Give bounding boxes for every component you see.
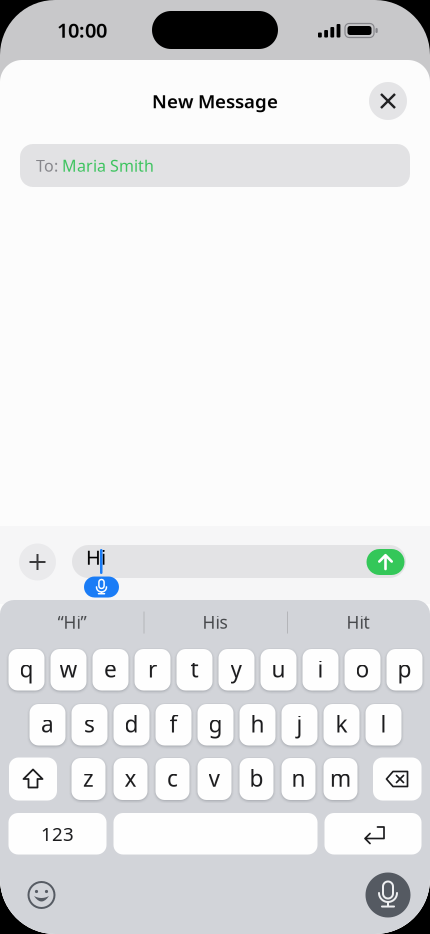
button[interactable]: e [92,649,128,690]
button[interactable]: i [302,649,338,690]
button[interactable]: p [386,649,422,690]
staticText: u [271,654,285,684]
button[interactable]: b [239,758,273,800]
button[interactable]: Emoji [25,879,57,911]
staticText: r [148,654,157,684]
button[interactable]: “Hi” [2,606,142,638]
staticText: h [250,709,264,739]
button[interactable]: Close [369,82,407,120]
button[interactable]: c [155,758,189,800]
staticText: His [202,610,227,633]
button[interactable]: x [113,758,147,800]
staticText: x [124,763,136,793]
staticText: a [41,709,54,739]
button[interactable]: g [197,704,233,745]
button[interactable]: To: Maria Smith [20,144,410,187]
button[interactable]: His [145,606,285,638]
staticText: Maria Smith [62,155,154,176]
button[interactable]: l [365,704,401,745]
button[interactable]: y [218,649,254,690]
staticText: 123 [41,821,74,846]
staticText: f [169,709,177,739]
button[interactable]: s [71,704,107,745]
button[interactable]: a [29,704,65,745]
button[interactable]: h [239,704,275,745]
staticText: Hi [86,544,106,570]
staticText: To: [36,155,58,176]
button[interactable]: Space [113,813,317,854]
button[interactable]: Return [324,813,421,854]
staticText: i [317,654,323,684]
button[interactable]: j [281,704,317,745]
staticText: w [59,654,77,684]
staticText: y [230,654,242,684]
staticText: k [335,709,347,739]
staticText: c [167,763,178,793]
button[interactable]: k [323,704,359,745]
button[interactable]: Delete [373,757,421,800]
staticText: 10:00 [57,17,107,43]
staticText: New Message [152,89,278,113]
button[interactable]: d [113,704,149,745]
button[interactable]: Dictation [84,576,119,597]
staticText: p [397,654,411,684]
button[interactable]: Shift [9,757,57,800]
staticText: b [249,763,263,793]
button[interactable]: Numbers [8,813,106,854]
button[interactable]: u [260,649,296,690]
staticText: t [190,654,198,684]
button[interactable]: Dictation [365,872,410,917]
staticText: o [355,654,369,684]
button[interactable]: n [281,758,315,800]
staticText: l [380,709,386,739]
staticText: z [83,763,94,793]
button[interactable]: f [155,704,191,745]
button[interactable]: q [8,649,44,690]
button[interactable]: o [344,649,380,690]
button[interactable]: Hit [288,606,428,638]
staticText: j [296,709,302,739]
staticText: g [208,709,222,739]
button[interactable]: More options [19,543,56,580]
button[interactable]: m [323,758,357,800]
staticText: v [208,763,220,793]
staticText: d [124,709,138,739]
staticText: s [84,709,95,739]
button[interactable]: Send [366,549,404,575]
button[interactable]: v [197,758,231,800]
staticText: n [291,763,305,793]
staticText: e [104,654,117,684]
staticText: “Hi” [57,610,86,633]
button[interactable]: t [176,649,212,690]
button[interactable]: r [134,649,170,690]
staticText: m [330,763,351,793]
staticText: Hit [346,610,369,633]
button[interactable]: z [71,758,105,800]
staticText: q [19,654,33,684]
button[interactable]: w [50,649,86,690]
